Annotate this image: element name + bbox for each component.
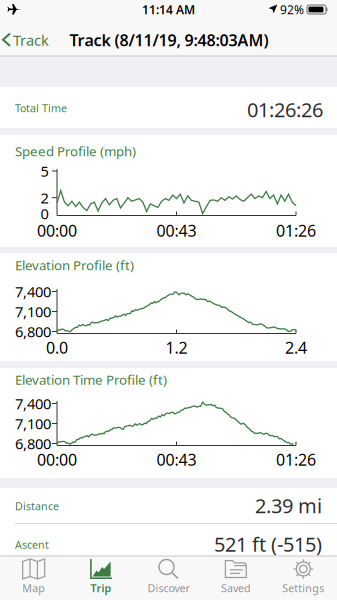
staticText: Settings [282,581,324,595]
staticText: 2.39 mi [255,492,322,519]
staticText: 7,100 [15,414,51,433]
staticText: 00:00 [37,220,77,241]
staticText: Ascent [15,537,49,552]
staticText: 6,800 [15,434,51,453]
staticText: 01:26 [276,220,316,241]
staticText: Elevation Profile (ft) [15,256,134,274]
staticText: 0.0 [46,337,68,358]
staticText: Track [13,30,49,50]
staticText: 1.2 [165,337,187,358]
staticText: Distance [15,499,59,513]
staticText: 6,800 [15,322,51,341]
staticText: 521 ft (-515) [214,531,322,557]
staticText: 00:43 [156,449,196,470]
staticText: Track (8/11/19, 9:48:03AM) [69,29,268,51]
staticText: 7,400 [15,282,51,301]
staticText: Total Time [15,101,67,115]
staticText: Speed Profile (mph) [15,142,136,160]
staticText: 2.4 [285,337,307,358]
staticText: Map [22,581,45,595]
staticText: Elevation Time Profile (ft) [15,371,167,388]
staticText: 5 [40,161,48,181]
staticText: 01:26:26 [247,96,323,123]
staticText: 00:43 [156,220,196,241]
staticText: 7,100 [15,302,51,321]
staticText: 00:00 [37,449,77,470]
staticText: Trip [91,581,112,595]
staticText: Saved [221,581,251,595]
staticText: Discover [147,581,189,595]
staticText: 92% [280,1,304,17]
staticText: 11:14 AM [142,1,195,17]
staticText: 7,400 [15,394,51,413]
staticText: 01:26 [276,449,316,470]
staticText: 0 [40,204,48,223]
staticText: 2 [40,188,48,207]
